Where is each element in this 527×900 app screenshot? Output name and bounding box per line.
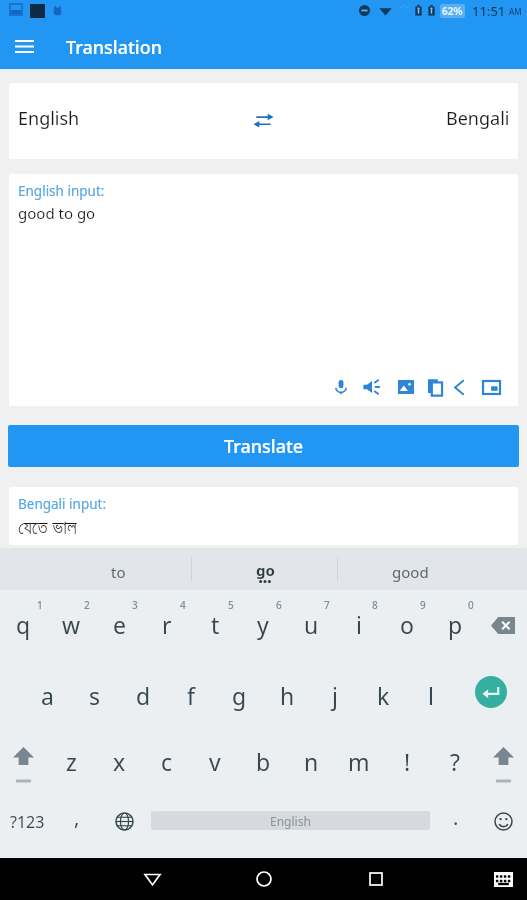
button[interactable]: s	[71, 661, 119, 726]
staticText: 8	[372, 598, 378, 612]
button[interactable]: c	[143, 726, 191, 789]
staticText: m	[348, 746, 370, 777]
staticText: n	[304, 746, 319, 777]
button[interactable]: g	[215, 661, 263, 726]
button[interactable]: a	[23, 661, 71, 726]
button[interactable]: Bengali	[446, 106, 510, 131]
button[interactable]: .	[433, 787, 479, 856]
staticText: 1	[37, 598, 43, 612]
staticText: Bengali input:	[18, 495, 107, 513]
button[interactable]: Picture in picture	[479, 375, 503, 399]
button[interactable]: Enter	[455, 661, 527, 726]
staticText: 62%	[442, 4, 463, 18]
staticText: good to go	[18, 203, 96, 223]
staticText: 5	[228, 598, 234, 612]
button[interactable]: good	[338, 548, 483, 590]
button[interactable]: u	[287, 590, 335, 661]
button[interactable]: z	[47, 726, 95, 789]
button[interactable]: Swap languages	[248, 105, 278, 135]
staticText: 0	[468, 598, 474, 612]
button[interactable]: Backspace	[479, 590, 527, 661]
button[interactable]: v	[191, 726, 239, 789]
button[interactable]: Back	[447, 375, 471, 399]
button[interactable]: Open navigation drawer	[0, 21, 48, 69]
button[interactable]: i	[335, 590, 383, 661]
button[interactable]: f	[167, 661, 215, 726]
staticText: ?	[450, 746, 460, 777]
button[interactable]: x	[95, 726, 143, 789]
staticText: Translation	[66, 35, 162, 60]
staticText: English	[18, 106, 80, 131]
button[interactable]: l	[407, 661, 455, 726]
button[interactable]: k	[359, 661, 407, 726]
button[interactable]: English	[18, 106, 80, 131]
button[interactable]: to	[45, 548, 191, 590]
staticText: q	[16, 609, 31, 640]
button[interactable]: p	[431, 590, 479, 661]
staticText: b	[256, 746, 271, 777]
staticText: 6	[276, 598, 282, 612]
staticText: 7	[324, 598, 330, 612]
staticText: ?123	[10, 811, 45, 833]
button[interactable]: Speak aloud	[360, 375, 384, 399]
staticText: to	[111, 562, 126, 582]
staticText: English input:	[18, 182, 105, 200]
staticText: y	[257, 609, 269, 640]
staticText: w	[62, 609, 81, 640]
button[interactable]: Shift	[479, 726, 527, 789]
button[interactable]: Shift	[0, 726, 47, 789]
staticText: ,	[74, 804, 80, 831]
button[interactable]: t	[191, 590, 239, 661]
button[interactable]: q	[0, 590, 47, 661]
button[interactable]: y	[239, 590, 287, 661]
staticText: p	[448, 609, 463, 640]
staticText: v	[209, 746, 221, 777]
staticText: c	[161, 746, 173, 777]
button[interactable]: j	[311, 661, 359, 726]
button[interactable]: Recent apps	[355, 858, 397, 900]
button[interactable]: !	[383, 726, 431, 789]
staticText: a	[41, 680, 54, 711]
button[interactable]: Home	[243, 858, 285, 900]
button[interactable]: Voice input	[329, 375, 353, 399]
staticText: Bengali	[446, 106, 510, 131]
button[interactable]: Translate	[8, 425, 519, 467]
staticText: t	[211, 609, 220, 640]
button[interactable]: b	[239, 726, 287, 789]
button[interactable]: m	[335, 726, 383, 789]
staticText: i	[356, 609, 362, 640]
button[interactable]: Copy text	[423, 375, 447, 399]
button[interactable]: Emoji	[479, 787, 527, 856]
staticText: 9	[420, 598, 426, 612]
staticText: x	[113, 746, 126, 777]
button[interactable]: h	[263, 661, 311, 726]
button[interactable]: o	[383, 590, 431, 661]
button[interactable]: Insert image	[394, 375, 418, 399]
button[interactable]: ?123	[0, 787, 54, 856]
button[interactable]: d	[119, 661, 167, 726]
button[interactable]: Change keyboard language	[100, 787, 148, 856]
button[interactable]: Back	[131, 858, 173, 900]
button[interactable]: r	[143, 590, 191, 661]
staticText: 3	[132, 598, 138, 612]
button[interactable]: n	[287, 726, 335, 789]
button[interactable]: w	[47, 590, 95, 661]
button[interactable]: ,	[54, 787, 100, 856]
staticText: 2	[84, 598, 90, 612]
staticText: English	[270, 813, 311, 829]
staticText: !	[404, 746, 411, 777]
staticText: Translate	[224, 434, 304, 459]
staticText: good	[392, 562, 429, 582]
staticText: d	[136, 680, 151, 711]
button[interactable]: Hide keyboard	[485, 861, 521, 897]
staticText: e	[113, 609, 126, 640]
button[interactable]: ?	[431, 726, 479, 789]
staticText: r	[162, 609, 172, 640]
staticText: k	[377, 680, 390, 711]
staticText: h	[280, 680, 295, 711]
staticText: যেতে ভাল	[18, 514, 77, 540]
button[interactable]: English	[148, 787, 433, 856]
staticText: u	[304, 609, 319, 640]
button[interactable]: e	[95, 590, 143, 661]
button[interactable]: go	[192, 548, 337, 590]
